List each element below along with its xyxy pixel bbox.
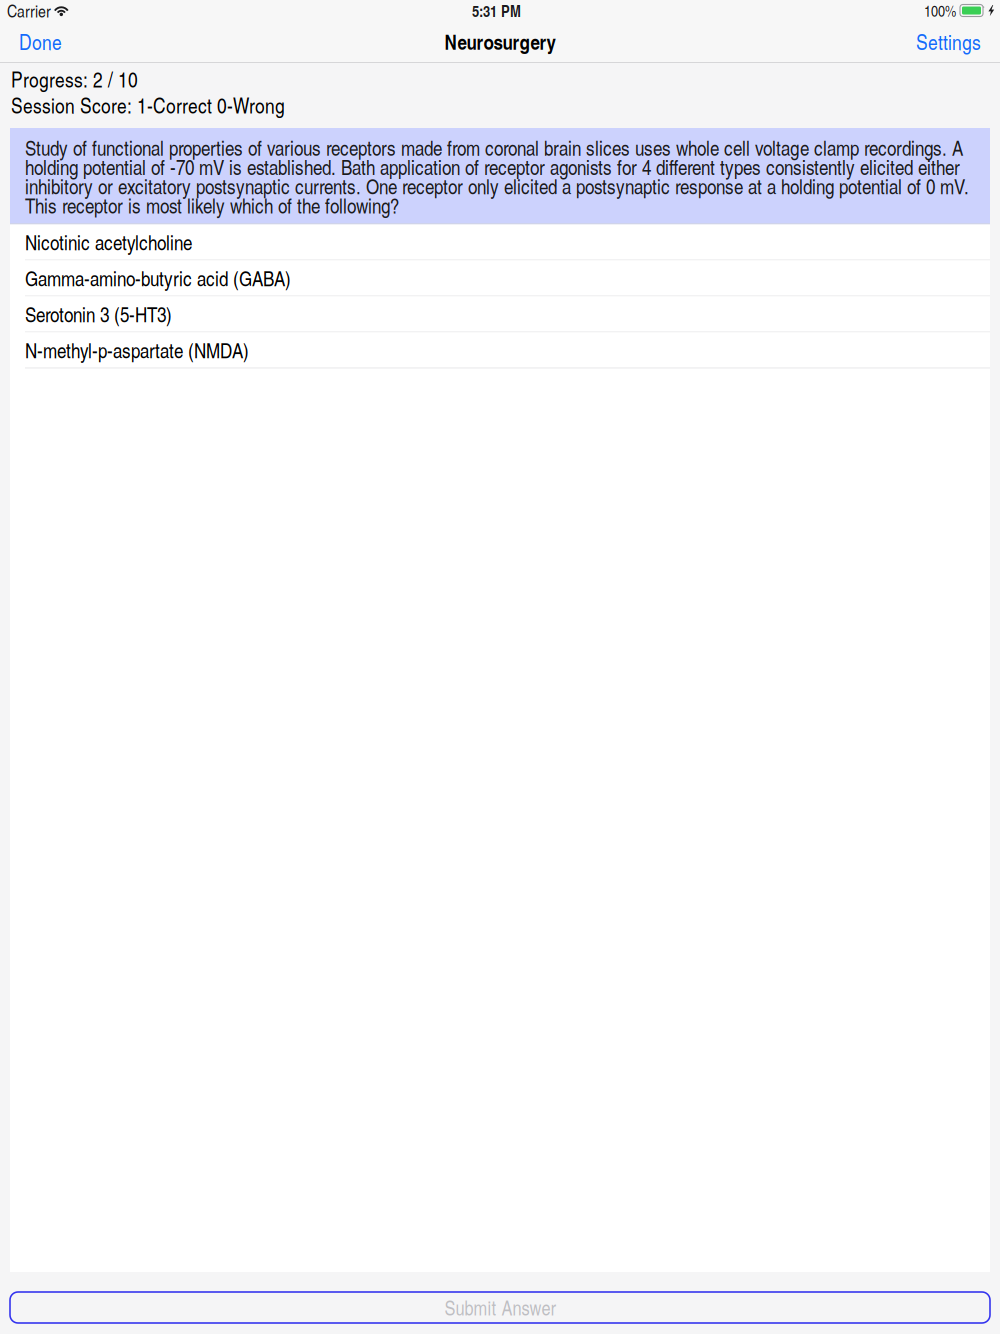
staticText: Carrier (7, 0, 51, 22)
button[interactable]: Done (9, 21, 72, 62)
staticText: Submit Answer (444, 1294, 555, 1321)
button[interactable]: Submit Answer (10, 1292, 990, 1323)
staticText: 100% (924, 0, 956, 21)
staticText: N-methyl-p-aspartate (NMDA) (25, 336, 249, 364)
staticText: Nicotinic acetylcholine (25, 228, 192, 256)
staticText: Gamma-amino-butyric acid (GABA) (25, 264, 291, 292)
staticText: Done (19, 27, 62, 56)
staticText: Serotonin 3 (5-HT3) (25, 300, 172, 328)
staticText: Neurosurgery (444, 27, 555, 56)
staticText: Settings (916, 27, 981, 56)
button[interactable]: Gamma-amino-butyric acid (GABA) (10, 260, 990, 296)
button[interactable]: Serotonin 3 (5-HT3) (10, 296, 990, 332)
staticText: Progress: 2 / 10 (11, 64, 138, 94)
staticText: 5:31 PM (472, 0, 521, 22)
staticText: Study of functional properties of variou… (25, 133, 969, 219)
button[interactable]: Settings (906, 21, 991, 62)
staticText: Session Score: 1-Correct 0-Wrong (11, 90, 285, 120)
button[interactable]: N-methyl-p-aspartate (NMDA) (10, 332, 990, 368)
button[interactable]: Nicotinic acetylcholine (10, 224, 990, 260)
